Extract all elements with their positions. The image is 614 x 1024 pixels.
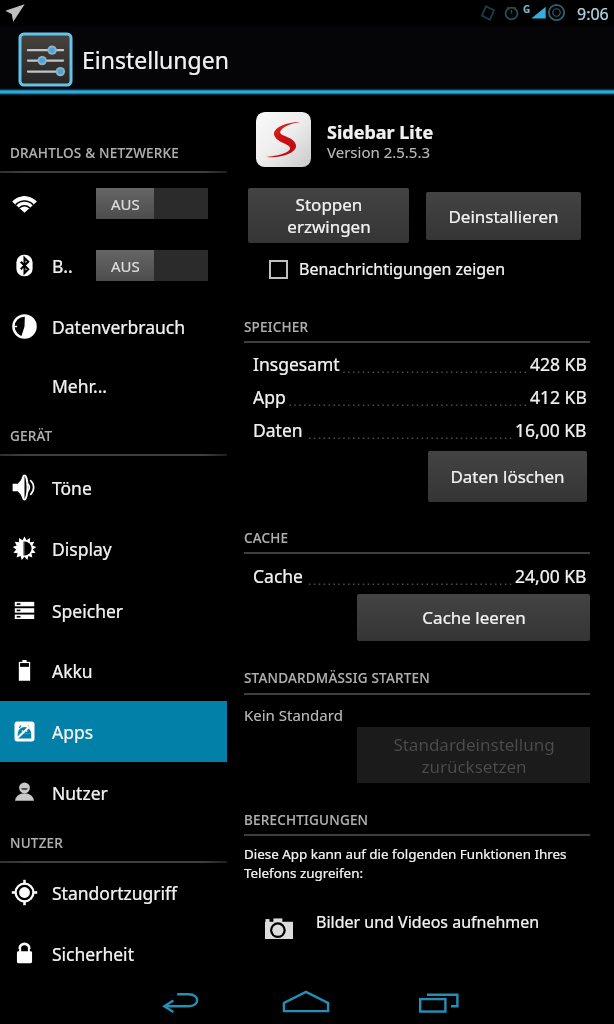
button[interactable]: B.. — [0, 235, 227, 296]
button[interactable]: Einstellungen — [0, 26, 614, 92]
staticText: Töne — [52, 476, 92, 500]
button[interactable]: Back — [141, 977, 221, 1024]
button[interactable]: Sicherheit — [0, 923, 227, 984]
staticText: B.. — [52, 254, 73, 278]
staticText: Cache leeren — [422, 606, 526, 629]
button[interactable]: AUS — [96, 250, 208, 281]
staticText: DRAHTLOS & NETZWERKE — [10, 144, 179, 162]
button[interactable]: AUS — [96, 188, 208, 219]
staticText: Akku — [52, 659, 93, 683]
staticText: Kein Standard — [244, 705, 343, 725]
button[interactable]: Datenverbrauch — [0, 296, 227, 357]
staticText: 412 KB — [530, 385, 587, 409]
staticText: Nutzer — [52, 781, 108, 805]
staticText: Mehr... — [52, 374, 108, 398]
staticText: App — [253, 385, 286, 409]
button[interactable]: Speicher — [0, 580, 227, 641]
staticText: Sidebar Lite — [327, 120, 434, 145]
staticText: AUS — [111, 194, 140, 214]
staticText: Daten — [253, 418, 303, 442]
button[interactable]: Benachrichtigungen zeigen — [269, 258, 506, 280]
staticText: Datenverbrauch — [52, 315, 186, 339]
staticText: AUS — [111, 256, 140, 276]
staticText: Sicherheit — [52, 942, 134, 966]
staticText: Benachrichtigungen zeigen — [299, 258, 506, 280]
button[interactable]: Standortzugriff — [0, 862, 227, 923]
button[interactable]: Töne — [0, 457, 227, 518]
staticText: Standardeinstellung zurücksetzen — [393, 733, 555, 778]
staticText: 428 KB — [530, 352, 587, 376]
staticText: Standortzugriff — [52, 881, 178, 905]
staticText: 24,00 KB — [515, 564, 587, 588]
button[interactable]: Display — [0, 518, 227, 579]
staticText: Diese App kann auf die folgenden Funktio… — [244, 845, 567, 881]
button[interactable]: Nutzer — [0, 762, 227, 823]
staticText: NUTZER — [10, 834, 64, 852]
button[interactable]: Home — [266, 977, 346, 1024]
button[interactable]: Stoppen erzwingen — [248, 188, 409, 243]
staticText: Stoppen erzwingen — [287, 193, 371, 238]
staticText: Cache — [253, 564, 303, 588]
button[interactable]: WLAN — [0, 173, 227, 234]
staticText: Bilder und Videos aufnehmen — [316, 911, 540, 933]
staticText: SPEICHER — [244, 318, 309, 336]
staticText: Apps — [52, 720, 94, 744]
button[interactable]: Mehr... — [0, 355, 227, 416]
staticText: CACHE — [244, 529, 289, 547]
button[interactable]: Daten löschen — [428, 451, 587, 502]
button[interactable]: Deinstallieren — [426, 192, 581, 240]
staticText: BERECHTIGUNGEN — [244, 811, 369, 829]
staticText: Display — [52, 537, 112, 561]
staticText: G — [523, 2, 531, 16]
staticText: Speicher — [52, 599, 124, 623]
staticText: 16,00 KB — [515, 418, 587, 442]
staticText: Daten löschen — [450, 465, 565, 488]
button[interactable]: Standardeinstellung zurücksetzen — [357, 727, 590, 783]
staticText: 9:06 — [577, 3, 609, 25]
staticText: GERÄT — [10, 427, 53, 445]
button[interactable]: Apps — [0, 701, 227, 762]
staticText: STANDARDMÄSSIG STARTEN — [244, 669, 430, 687]
staticText: Einstellungen — [82, 44, 229, 75]
staticText: Insgesamt — [253, 352, 340, 376]
button[interactable]: Akku — [0, 640, 227, 701]
staticText: Deinstallieren — [448, 205, 559, 228]
button[interactable]: Recent apps — [399, 977, 479, 1024]
button[interactable]: Cache leeren — [357, 594, 590, 641]
staticText: Version 2.5.5.3 — [327, 142, 431, 162]
